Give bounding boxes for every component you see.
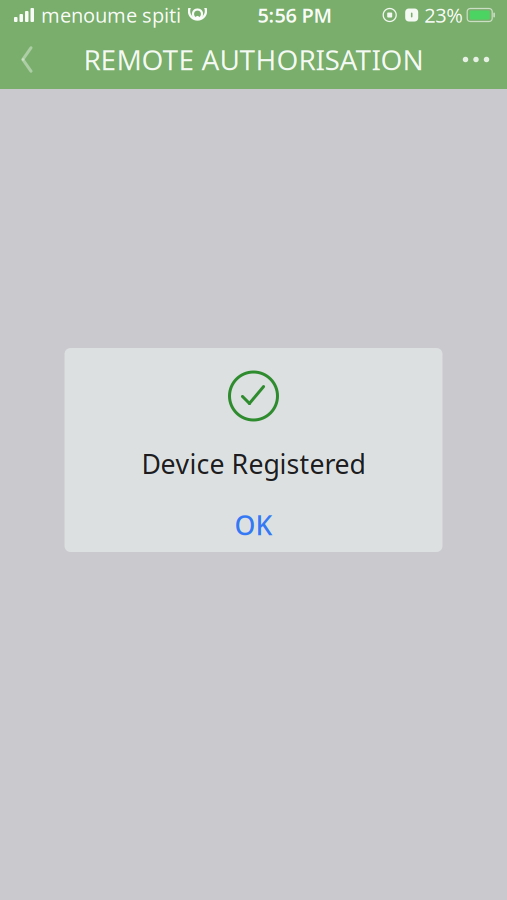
staticText: 5:56 PM xyxy=(258,2,333,28)
staticText: menoume spiti xyxy=(41,2,181,28)
button[interactable]: More options xyxy=(445,30,507,89)
staticText: Device Registered xyxy=(141,446,365,481)
staticText: OK xyxy=(234,507,272,543)
button[interactable]: Back xyxy=(0,30,54,89)
staticText: 23% xyxy=(424,2,463,28)
staticText: REMOTE AUTHORISATION xyxy=(83,41,423,78)
button[interactable]: OK xyxy=(64,498,442,552)
